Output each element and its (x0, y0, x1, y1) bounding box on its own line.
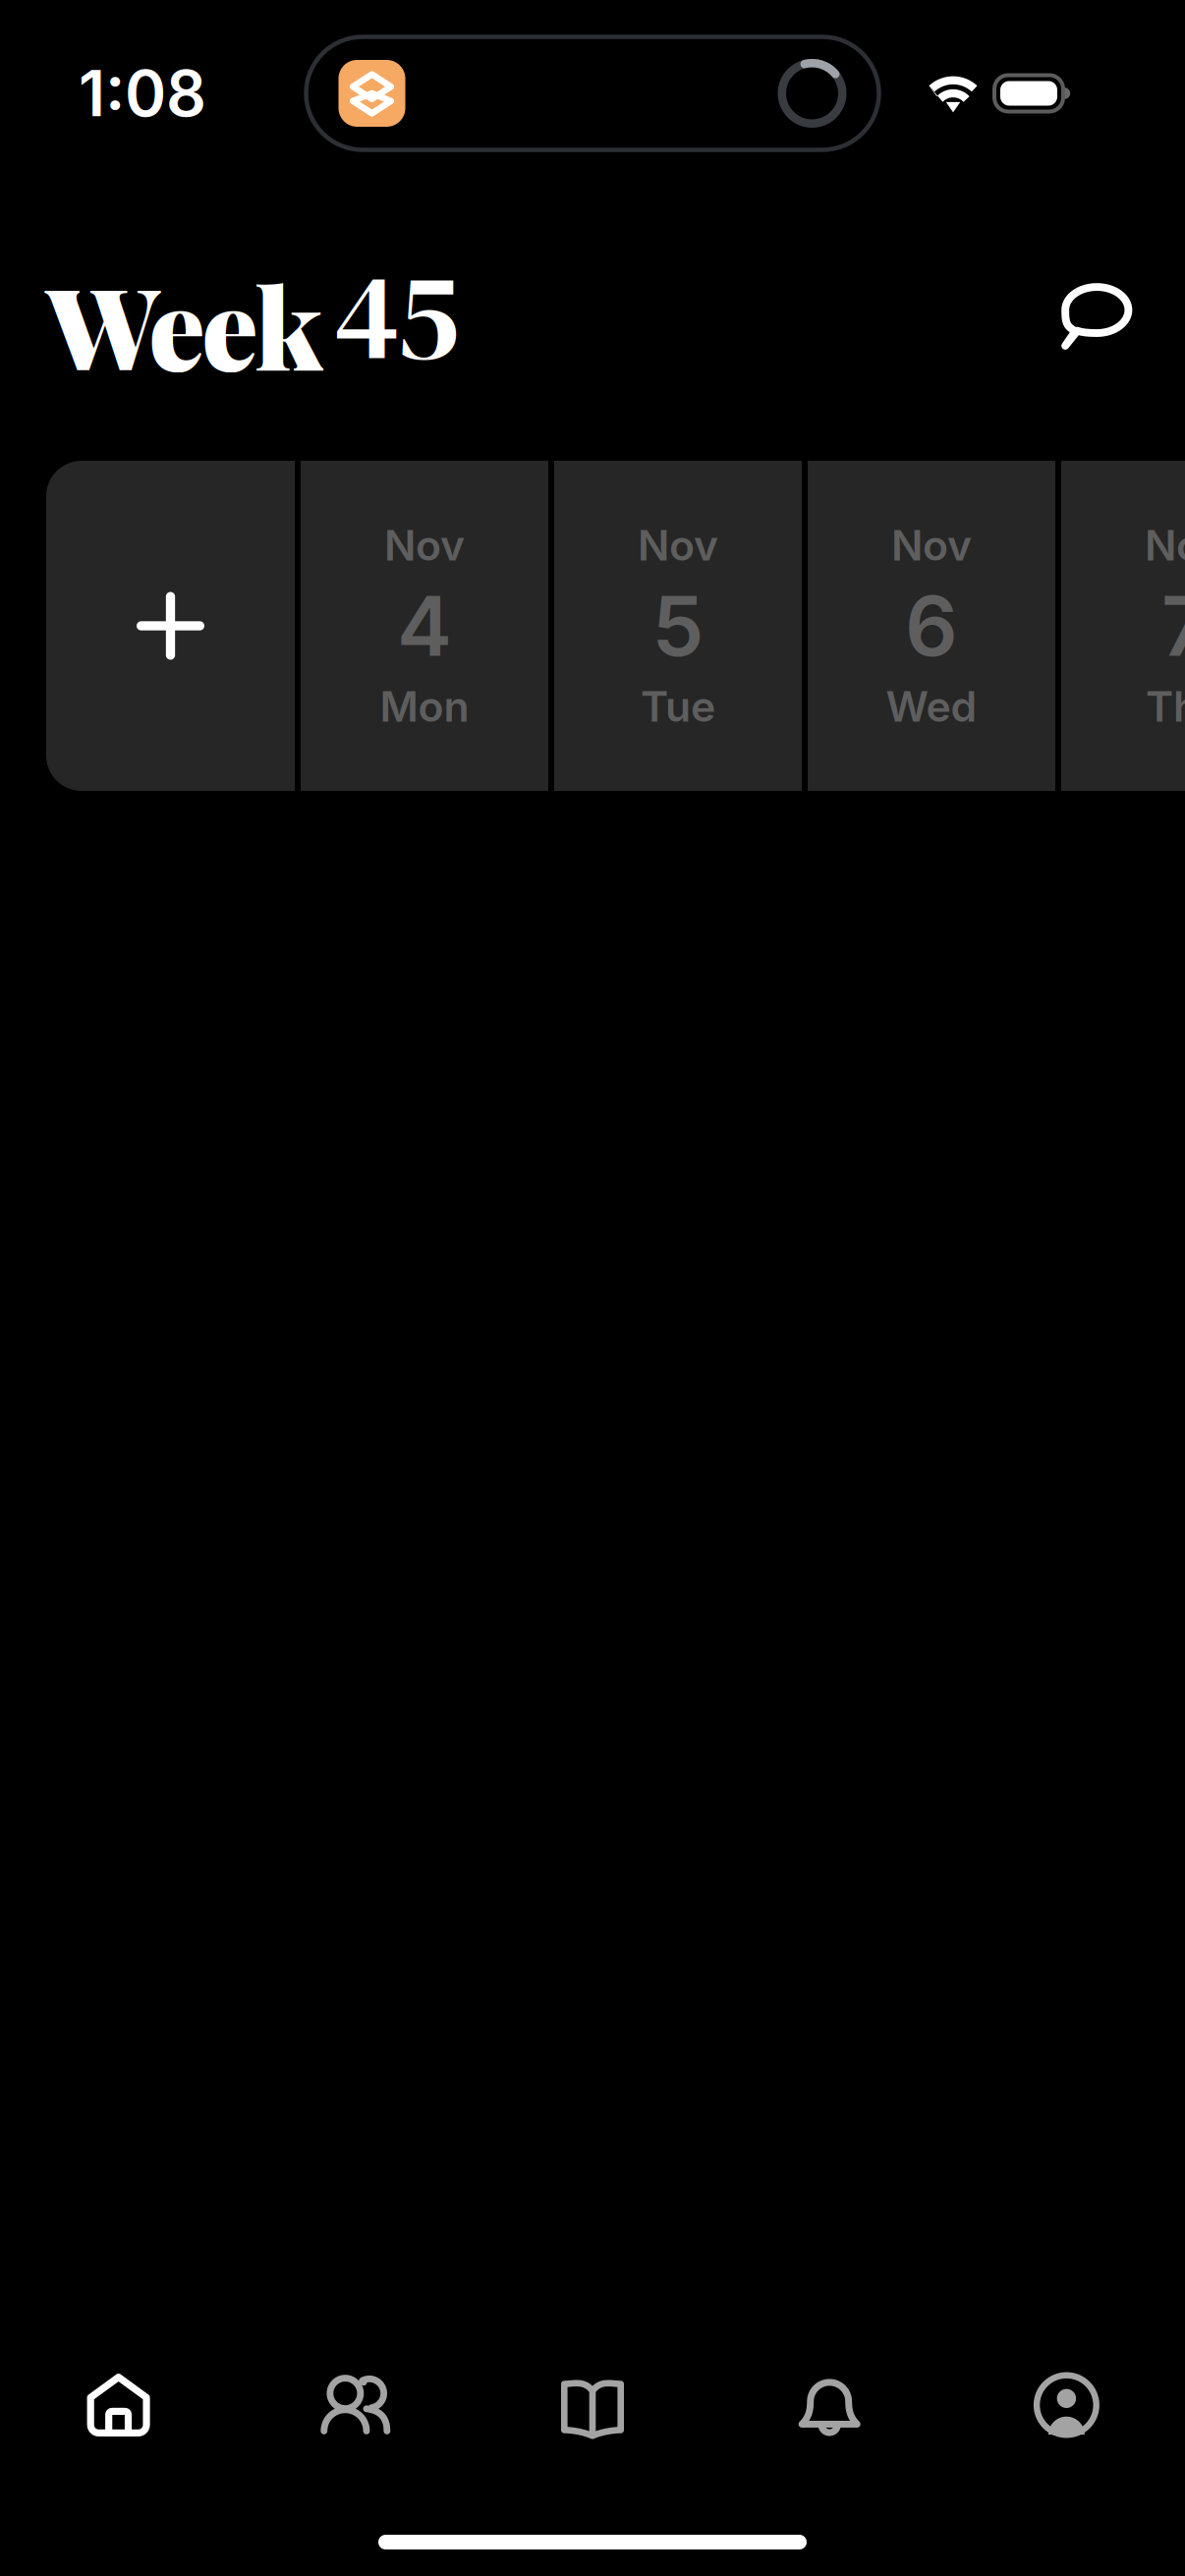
staticText: Nov (1145, 520, 1185, 571)
staticText: 45 (334, 232, 460, 399)
button[interactable]: Profile (948, 2358, 1185, 2452)
button[interactable]: Nov (301, 461, 548, 791)
staticText: Nov (384, 520, 465, 571)
staticText: 4 (397, 576, 452, 676)
staticText: Mon (380, 681, 469, 732)
button[interactable]: Home (0, 2358, 237, 2452)
staticText: Nov (638, 520, 718, 571)
button[interactable]: Nov (1061, 461, 1185, 791)
button[interactable]: Friends (237, 2358, 474, 2452)
staticText: Nov (891, 520, 972, 571)
staticText: 6 (905, 576, 958, 676)
button[interactable]: Add day (46, 461, 295, 791)
staticText: 5 (652, 576, 704, 676)
button[interactable]: Messages (1048, 270, 1139, 361)
staticText: Tue (641, 681, 715, 732)
staticText: 7 (1161, 576, 1185, 676)
staticText: 1:08 (79, 55, 206, 131)
staticText: Wed (886, 681, 977, 732)
staticText: Thu (1146, 681, 1185, 732)
staticText: Week (46, 249, 323, 399)
button[interactable]: Journal (474, 2358, 711, 2452)
button[interactable]: Nov (808, 461, 1055, 791)
button[interactable]: Nov (554, 461, 802, 791)
button[interactable]: Notifications (711, 2358, 948, 2452)
